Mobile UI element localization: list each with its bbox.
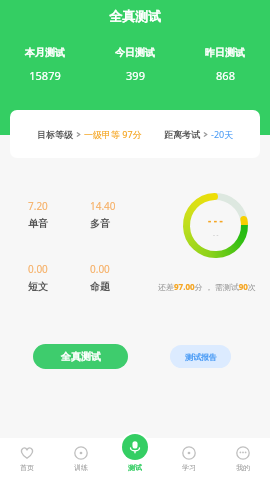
button[interactable]: 本月测试 (0, 46, 90, 83)
button[interactable]: 昨日测试 (180, 46, 270, 83)
staticText: 868 (216, 68, 235, 83)
button[interactable]: 首页 (0, 446, 54, 472)
staticText: 我的 (236, 463, 250, 472)
staticText: 学习 (182, 463, 196, 472)
staticText: 7.20 (28, 199, 48, 213)
staticText: 全真测试 (109, 8, 161, 24)
button[interactable]: 7.20 (28, 199, 90, 230)
button[interactable]: 0.00 (28, 262, 90, 293)
button[interactable]: 我的 (216, 446, 270, 472)
button[interactable]: 全真测试 (33, 344, 128, 369)
staticText: 一级甲等 97分 (84, 128, 142, 140)
button[interactable]: 14.40 (90, 199, 152, 230)
staticText: 0.00 (28, 262, 48, 276)
staticText: 命题 (90, 280, 110, 293)
staticText: 全真测试 (61, 350, 101, 363)
button[interactable]: 0.00 (90, 262, 152, 293)
staticText: - - - (208, 213, 223, 227)
staticText: 还差97.00分 ， 需测试90次 (158, 281, 256, 292)
button[interactable]: 目标等级 (10, 110, 260, 158)
staticText: 0.00 (90, 262, 110, 276)
staticText: 首页 (20, 463, 34, 472)
staticText: 今日测试 (115, 46, 155, 59)
staticText: 训练 (74, 463, 88, 472)
button[interactable]: 测试 (120, 432, 150, 478)
staticText: - - (213, 231, 219, 239)
staticText: 本月测试 (25, 46, 65, 59)
button[interactable]: 今日测试 (90, 46, 180, 83)
staticText: 短文 (28, 280, 48, 293)
staticText: 目标等级 (37, 129, 73, 140)
staticText: 多音 (90, 217, 110, 230)
staticText: 测试 (128, 463, 142, 472)
button[interactable]: 训练 (54, 446, 108, 472)
staticText: 昨日测试 (205, 46, 245, 59)
button[interactable]: 测试报告 (170, 345, 231, 368)
staticText: -20天 (211, 128, 234, 140)
button[interactable]: 学习 (162, 446, 216, 472)
staticText: 399 (126, 68, 145, 83)
staticText: 单音 (28, 217, 48, 230)
staticText: 14.40 (90, 199, 116, 213)
staticText: 距离考试 (164, 129, 200, 140)
staticText: 测试报告 (185, 352, 217, 362)
staticText: 15879 (29, 68, 61, 83)
